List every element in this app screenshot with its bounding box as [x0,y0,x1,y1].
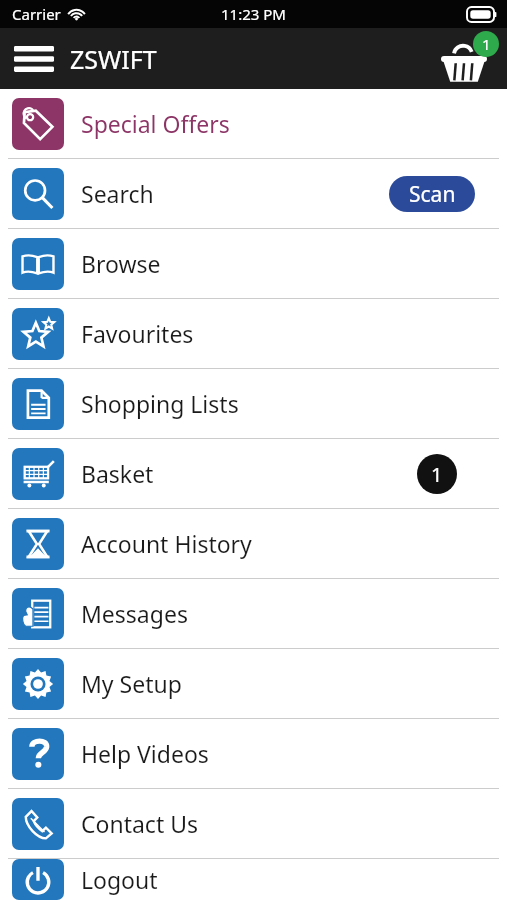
staticText: Favourites [81,318,194,349]
button[interactable]: Browse [0,229,507,298]
button[interactable]: My Setup [0,649,507,718]
staticText: Contact Us [81,808,199,839]
staticText: Logout [81,864,158,895]
button[interactable]: Help Videos [0,719,507,788]
button[interactable]: Basket [0,439,507,508]
button[interactable]: Search [0,159,507,228]
button[interactable]: Shopping Lists [0,369,507,438]
button[interactable]: Logout [0,859,507,900]
button[interactable]: Contact Us [0,789,507,858]
button[interactable]: Account History [0,509,507,578]
staticText: 11:23 PM [221,4,286,24]
button[interactable]: Favourites [0,299,507,368]
button[interactable]: Open navigation menu [8,33,60,85]
staticText: 1 [431,461,443,488]
staticText: Search [81,178,154,209]
staticText: Special Offers [81,108,230,139]
staticText: ZSWIFT [70,42,157,76]
staticText: 1 [482,34,491,54]
staticText: My Setup [81,668,182,699]
staticText: Help Videos [81,738,209,769]
staticText: Browse [81,248,161,279]
button[interactable]: Scan [389,176,475,212]
staticText: Scan [409,180,456,209]
staticText: Carrier [12,4,61,24]
button[interactable]: Special Offers [0,89,507,158]
button[interactable]: Messages [0,579,507,648]
staticText: Account History [81,528,252,559]
staticText: Messages [81,598,188,629]
staticText: Shopping Lists [81,388,239,419]
staticText: Basket [81,458,154,489]
button[interactable]: Basket, 1 item [437,31,499,87]
